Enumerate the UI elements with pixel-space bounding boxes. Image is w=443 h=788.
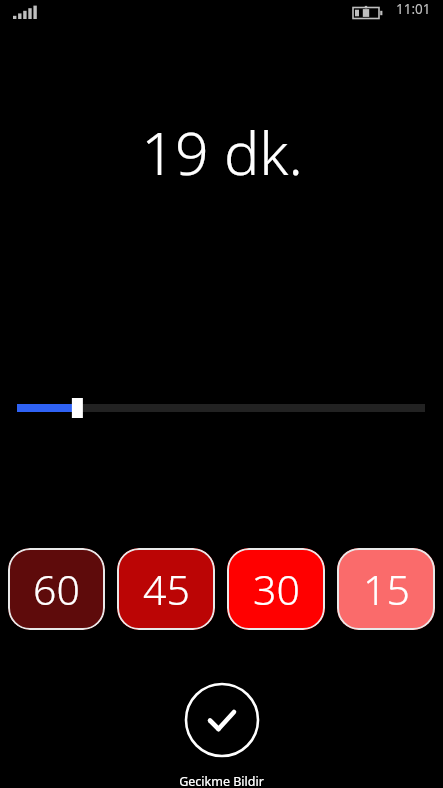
button[interactable]: 15	[337, 548, 435, 630]
button[interactable]: 45	[117, 548, 215, 630]
button[interactable]	[0, 394, 443, 422]
staticText: 45	[143, 561, 190, 617]
staticText: 11:01	[396, 0, 431, 18]
button[interactable]: 30	[227, 548, 325, 630]
button[interactable]: 60	[8, 548, 105, 630]
other: Signal strength	[13, 4, 41, 22]
staticText: 15	[363, 561, 410, 617]
staticText: 19 dk.	[141, 112, 303, 192]
other: Battery charging	[353, 6, 387, 20]
staticText: 60	[33, 561, 80, 617]
button[interactable]: Gecikme Bildir	[184, 682, 260, 758]
staticText: 30	[253, 561, 300, 617]
staticText: Gecikme Bildir	[179, 773, 264, 788]
